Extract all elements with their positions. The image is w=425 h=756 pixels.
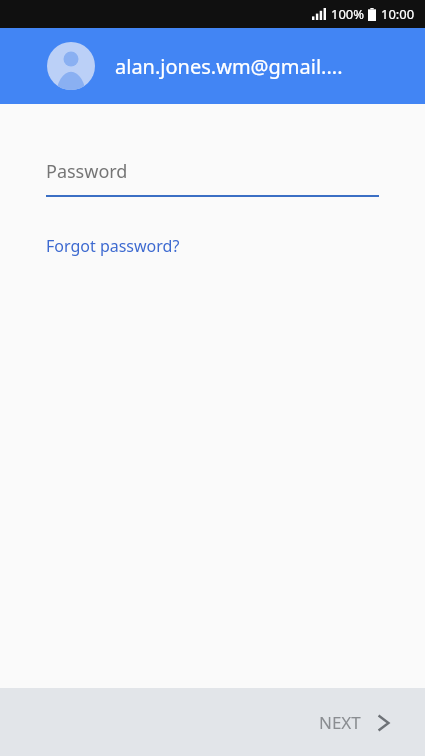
button[interactable]: Password	[46, 159, 379, 197]
button[interactable]: Forgot password?	[46, 235, 180, 257]
staticText: NEXT	[319, 711, 361, 734]
button[interactable]: Account avatar	[0, 42, 425, 90]
staticText: Password	[46, 159, 128, 184]
staticText: alan.jones.wm@gmail....	[115, 53, 343, 80]
staticText: 10:00	[381, 5, 415, 23]
staticText: 100%	[331, 5, 365, 23]
staticText: Forgot password?	[46, 235, 180, 257]
other: Account avatar	[47, 42, 95, 90]
button[interactable]: NEXT	[295, 699, 425, 746]
